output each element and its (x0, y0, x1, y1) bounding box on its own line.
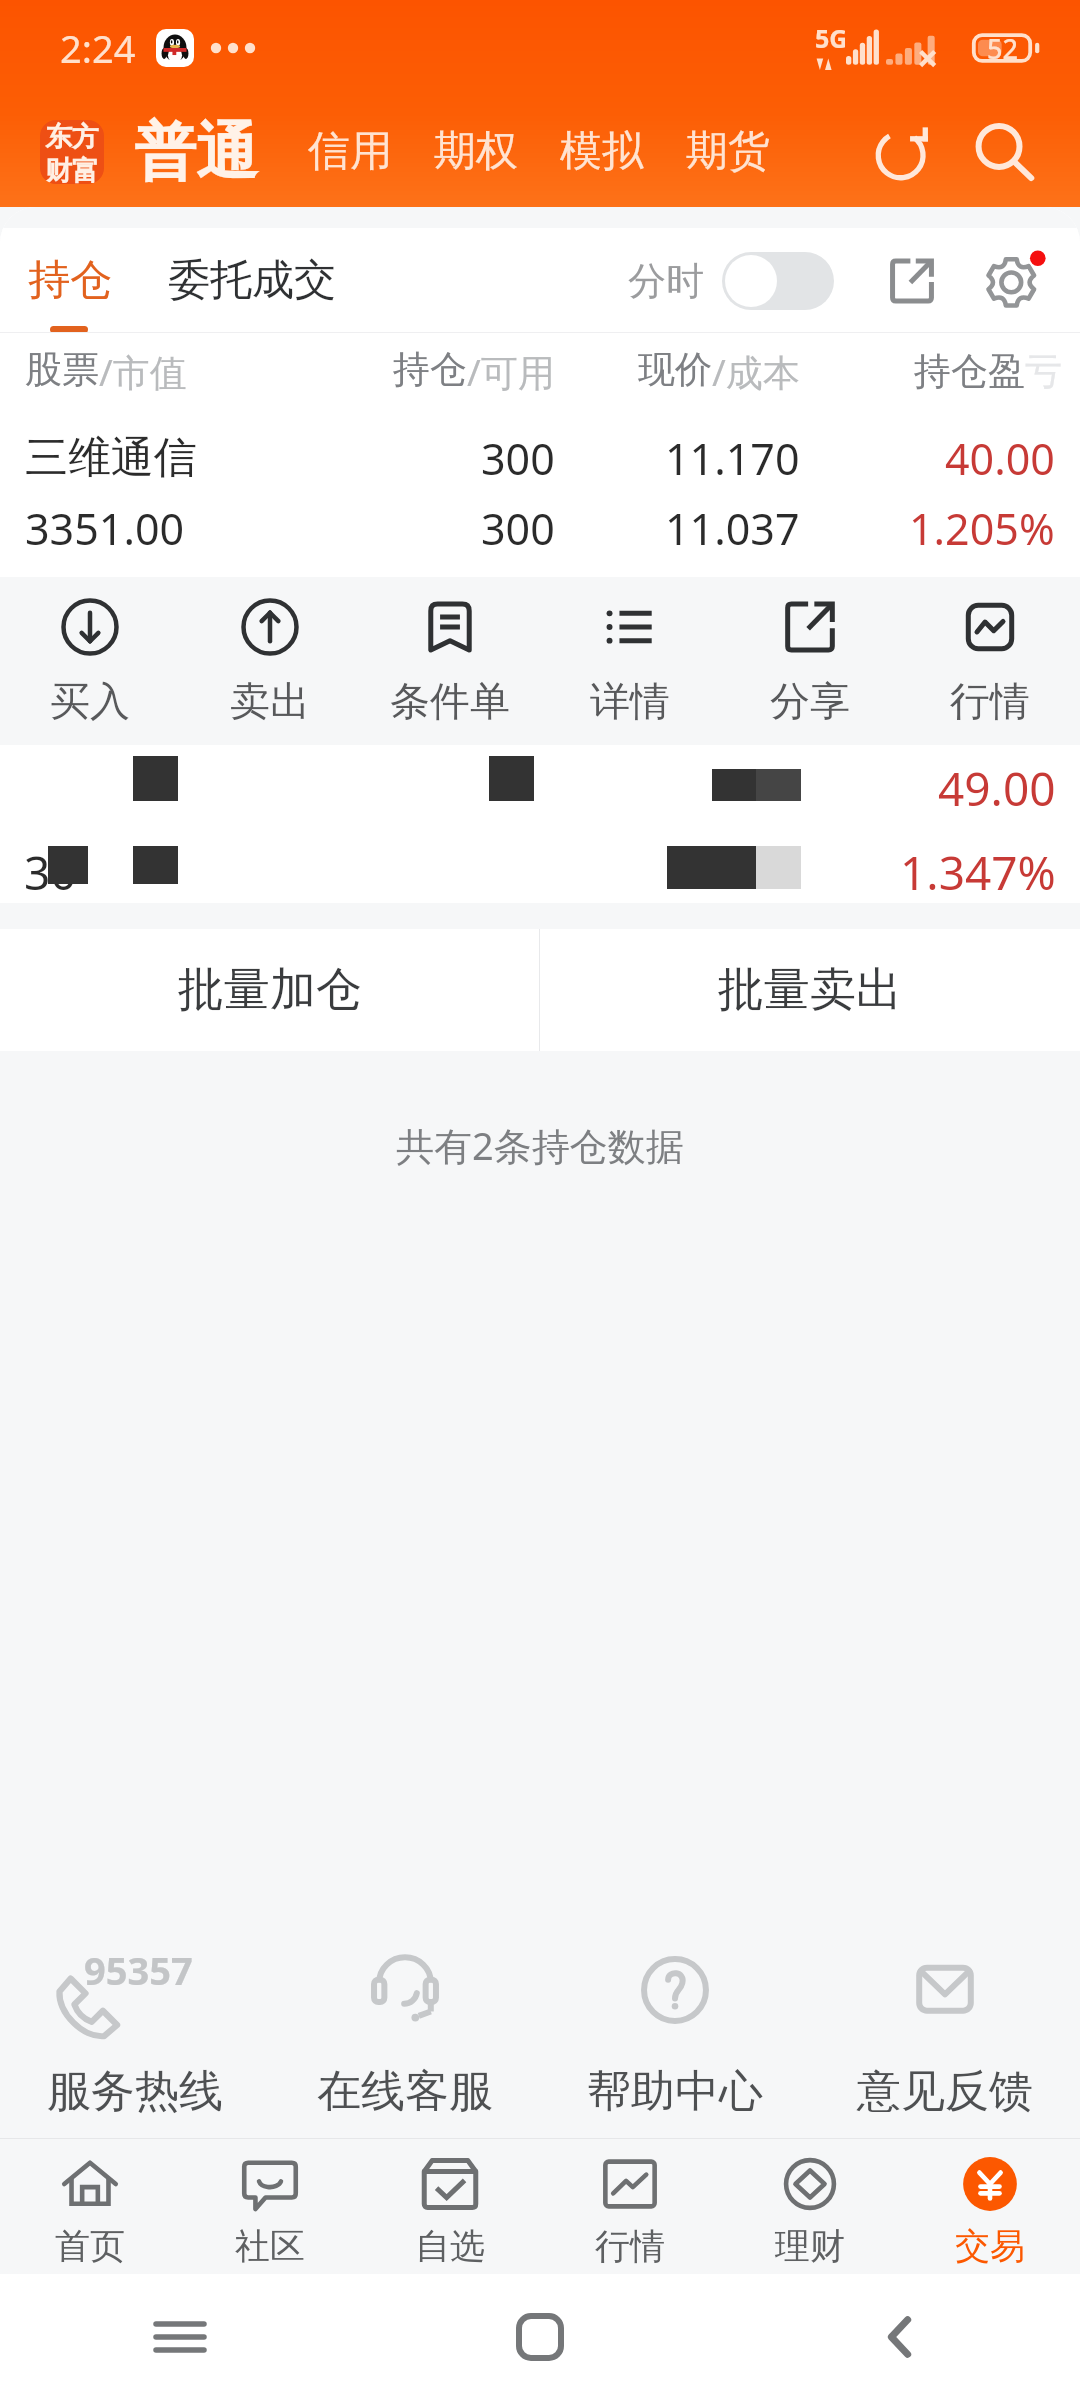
button[interactable]: 在线客服 (270, 1880, 540, 2138)
button[interactable]: 首页 (0, 2139, 180, 2274)
staticText: 期权 (434, 125, 518, 178)
button[interactable]: 期货 (665, 111, 791, 192)
staticText: 持仓 (393, 346, 467, 393)
button[interactable]: 买入 (0, 577, 180, 745)
staticText: 持仓盈 (914, 348, 1025, 395)
button[interactable]: Back (720, 2274, 1080, 2400)
staticText: 服务热线 (47, 2064, 223, 2119)
staticText: 帮助中心 (587, 2064, 763, 2119)
button[interactable]: 95357 (0, 1880, 270, 2138)
button[interactable]: 社区 (180, 2139, 360, 2274)
staticText: 分时 (628, 257, 704, 305)
staticText: 300 (481, 499, 555, 558)
button[interactable]: Search (958, 106, 1050, 198)
staticText: 300 (481, 429, 555, 488)
staticText: 社区 (235, 2224, 305, 2268)
staticText: 共有2条持仓数据 (396, 1119, 684, 1171)
staticText: 30 (24, 841, 77, 903)
staticText: 详情 (590, 676, 670, 726)
staticText: 52 (987, 30, 1018, 67)
button[interactable]: 49.00 (0, 745, 1080, 903)
button[interactable]: 分享 (720, 577, 900, 745)
button[interactable]: 卖出 (180, 577, 360, 745)
button[interactable]: 持仓 (16, 238, 124, 323)
staticText: 在线客服 (317, 2064, 493, 2119)
button[interactable]: 详情 (540, 577, 720, 745)
button[interactable]: 自选 (360, 2139, 540, 2274)
button[interactable]: 委托成交 (156, 238, 348, 323)
button[interactable]: 意见反馈 (810, 1880, 1080, 2138)
staticText: 1.205% (909, 499, 1055, 558)
button[interactable]: 交易 (900, 2139, 1080, 2274)
staticText: 11.170 (665, 429, 800, 488)
staticText: 亏 (1025, 348, 1062, 395)
button[interactable]: 行情 (540, 2139, 720, 2274)
staticText: 普通 (134, 113, 258, 191)
button[interactable]: 条件单 (360, 577, 540, 745)
button[interactable]: 行情 (900, 577, 1080, 745)
button[interactable]: 批量加仓 (0, 929, 539, 1051)
staticText: 40.00 (945, 429, 1055, 488)
staticText: 三维通信 (25, 431, 197, 485)
button[interactable]: 期权 (413, 111, 539, 192)
staticText: /市值 (99, 346, 187, 397)
staticText: 批量卖出 (718, 961, 902, 1019)
staticText: 首页 (55, 2224, 125, 2268)
staticText: /可用 (467, 346, 555, 397)
staticText: 95357 (84, 1944, 193, 1996)
staticText: 交易 (955, 2224, 1025, 2268)
button[interactable]: Share (874, 243, 950, 319)
button[interactable]: Settings (976, 243, 1052, 319)
staticText: 3351.00 (25, 499, 185, 558)
button[interactable]: 批量卖出 (540, 929, 1080, 1051)
staticText: 2:24 (60, 22, 136, 74)
staticText: 股票 (25, 346, 99, 393)
staticText: /成本 (712, 346, 800, 397)
staticText: 买入 (50, 676, 130, 726)
staticText: 分享 (770, 676, 850, 726)
staticText: 现价 (638, 346, 712, 393)
staticText: 卖出 (230, 676, 310, 726)
staticText: 行情 (950, 676, 1030, 726)
staticText: 11.037 (665, 499, 800, 558)
staticText: 委托成交 (168, 254, 336, 307)
staticText: 意见反馈 (857, 2064, 1033, 2119)
staticText: 信用 (308, 125, 392, 178)
staticText: 5G (815, 21, 845, 55)
staticText: 1.347% (900, 841, 1056, 903)
button[interactable]: Refresh (858, 106, 950, 198)
staticText: 行情 (595, 2224, 665, 2268)
staticText: 条件单 (390, 676, 510, 726)
staticText: 东方 (45, 120, 99, 154)
button[interactable]: Recents (0, 2274, 360, 2400)
button[interactable]: 模拟 (539, 111, 665, 192)
button[interactable]: 帮助中心 (540, 1880, 810, 2138)
button[interactable]: 理财 (720, 2139, 900, 2274)
button[interactable]: 信用 (287, 111, 413, 192)
button[interactable]: 三维通信 (0, 409, 1080, 577)
staticText: 理财 (775, 2224, 845, 2268)
staticText: 49.00 (938, 757, 1056, 820)
button[interactable]: Home (360, 2274, 720, 2400)
staticText: 财富 (45, 154, 99, 184)
staticText: 自选 (415, 2224, 485, 2268)
staticText: 批量加仓 (178, 961, 362, 1019)
staticText: 持仓 (28, 254, 112, 307)
button[interactable]: Time-share toggle (722, 252, 834, 310)
staticText: 期货 (686, 125, 770, 178)
staticText: 模拟 (560, 125, 644, 178)
